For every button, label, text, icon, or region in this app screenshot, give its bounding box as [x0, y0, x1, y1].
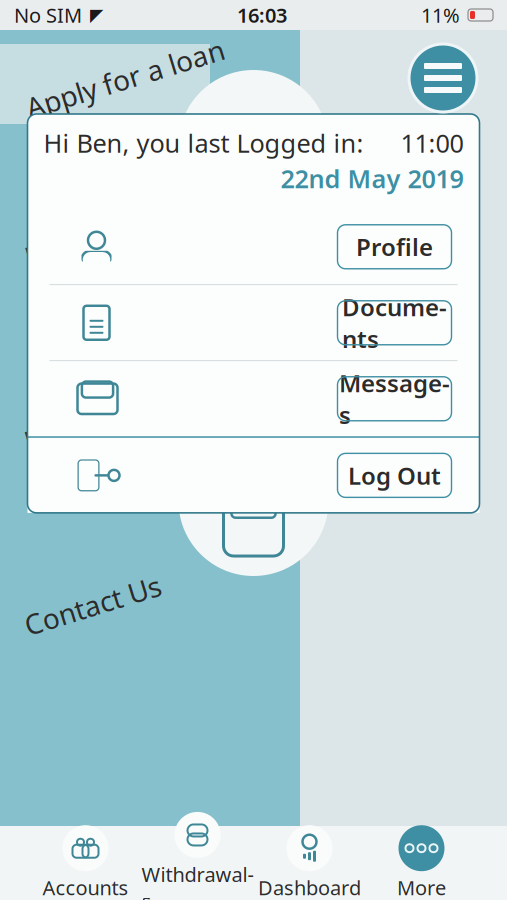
staticText: Messages — [22, 404, 151, 442]
button[interactable]: More — [365, 826, 477, 900]
staticText: Documents — [22, 217, 171, 254]
button[interactable]: Menu — [409, 44, 477, 112]
staticText: Messages — [339, 367, 450, 431]
button[interactable]: Profile — [27, 209, 479, 284]
staticText: 11% — [421, 2, 460, 28]
button[interactable]: Profile — [337, 225, 451, 269]
staticText: Accounts — [42, 874, 128, 900]
button[interactable]: Messages — [27, 361, 479, 436]
staticText: Contact Us — [22, 586, 163, 624]
staticText: Documents — [342, 291, 447, 355]
staticText: No SIM — [14, 2, 82, 28]
staticText: Apply for a loan — [22, 60, 228, 97]
staticText: 22nd May 2019 — [280, 162, 463, 195]
button[interactable]: Withdrawals — [141, 826, 253, 900]
staticText: ◤ — [90, 5, 103, 25]
staticText: More — [397, 874, 446, 900]
button[interactable]: Log Out — [337, 453, 451, 497]
staticText: Dashboard — [258, 874, 361, 900]
staticText: 11:00 — [400, 126, 463, 160]
staticText: Withdrawals — [141, 861, 253, 900]
button[interactable]: Dashboard — [253, 826, 365, 900]
button[interactable]: Accounts — [29, 826, 141, 900]
staticText: Profile — [356, 231, 433, 263]
staticText: Hi Ben, you last Logged in: — [43, 126, 363, 160]
button[interactable]: Documents — [27, 285, 479, 360]
staticText: Log Out — [348, 459, 441, 491]
button[interactable]: Documents — [337, 301, 451, 345]
button[interactable]: Messages — [337, 377, 451, 421]
staticText: 16:03 — [237, 2, 287, 28]
button[interactable]: Log Out — [27, 438, 479, 513]
